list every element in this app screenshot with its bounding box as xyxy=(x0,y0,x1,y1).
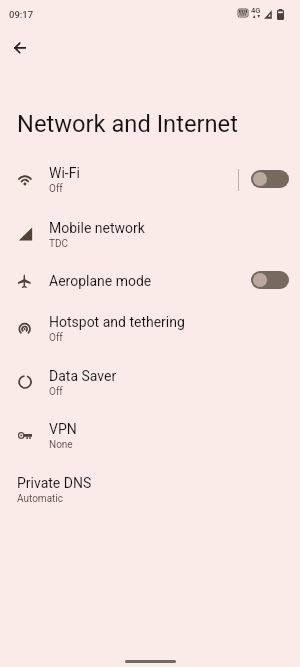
staticText: TDC xyxy=(49,238,69,250)
staticText: Hotspot and tethering xyxy=(49,314,185,330)
button[interactable]: Aeroplane mode xyxy=(0,261,300,301)
button[interactable]: Aeroplane mode switch xyxy=(251,271,289,289)
staticText: Off xyxy=(49,183,63,195)
staticText: Automatic xyxy=(17,493,64,505)
staticText: Aeroplane mode xyxy=(49,273,152,289)
staticText: Off xyxy=(49,332,63,344)
staticText: Mobile network xyxy=(49,220,145,236)
staticText: Private DNS xyxy=(17,475,92,491)
staticText: VPN xyxy=(49,421,77,437)
staticText: 09:17 xyxy=(9,9,34,20)
staticText: Network and Internet xyxy=(17,110,238,138)
staticText: Data Saver xyxy=(49,368,117,384)
button[interactable]: Mobile network xyxy=(0,207,300,261)
button[interactable]: Back xyxy=(6,30,42,66)
staticText: None xyxy=(49,439,73,451)
button[interactable]: Hotspot and tethering xyxy=(0,301,300,355)
button[interactable]: Wi-Fi xyxy=(0,152,300,206)
button[interactable]: Private DNS xyxy=(0,462,300,516)
button[interactable]: Wi-Fi switch xyxy=(251,170,289,188)
staticText: 4G xyxy=(251,6,261,15)
staticText: Wi-Fi xyxy=(49,165,80,181)
button[interactable]: VPN xyxy=(0,408,300,462)
staticText: Off xyxy=(49,386,63,398)
button[interactable]: Data Saver xyxy=(0,355,300,409)
